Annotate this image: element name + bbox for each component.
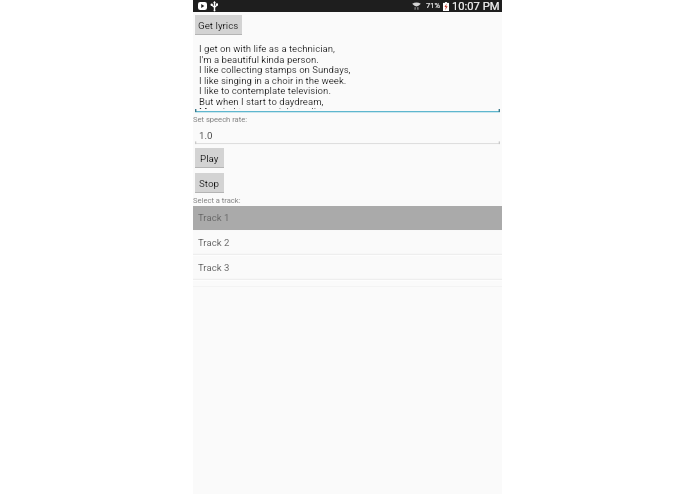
staticText: I like to contemplate television. (199, 85, 331, 96)
staticText: Track 1 (198, 212, 230, 223)
other: Battery (443, 2, 449, 11)
staticText: I like collecting stamps on Sundays, (199, 64, 351, 75)
button[interactable]: Track 3 (193, 256, 502, 281)
staticText: Track 3 (198, 262, 230, 273)
button[interactable]: Track 2 (193, 231, 502, 256)
staticText: I like singing in a choir in the week. (199, 75, 347, 86)
button[interactable]: Track 1 (193, 206, 502, 231)
staticText: I'm a beautiful kinda person. (199, 54, 319, 65)
staticText: Play (200, 153, 219, 164)
other: Wi-Fi (412, 1, 421, 10)
staticText: Track 2 (198, 237, 230, 248)
button[interactable]: Stop (195, 173, 224, 193)
staticText: But when I start to daydream, (199, 96, 324, 107)
other: Screen recording (198, 2, 207, 10)
button[interactable]: Play (195, 148, 224, 168)
staticText: 1.0 (199, 130, 213, 141)
staticText: Select a track: (193, 196, 241, 205)
staticText: 10:07 PM (452, 0, 500, 12)
staticText: 71% (426, 1, 441, 10)
button[interactable]: Lyrics text field (193, 43, 502, 109)
staticText: Set speech rate: (193, 115, 248, 124)
button[interactable]: 1.0 (193, 127, 502, 141)
button[interactable]: Get lyrics (195, 15, 242, 35)
staticText: I get on with life as a technician, (199, 43, 335, 54)
staticText: My mind turns straight to dirt. (199, 106, 326, 109)
staticText: Get lyrics (198, 20, 239, 31)
other: USB connected (211, 1, 218, 11)
staticText: Stop (199, 178, 220, 189)
